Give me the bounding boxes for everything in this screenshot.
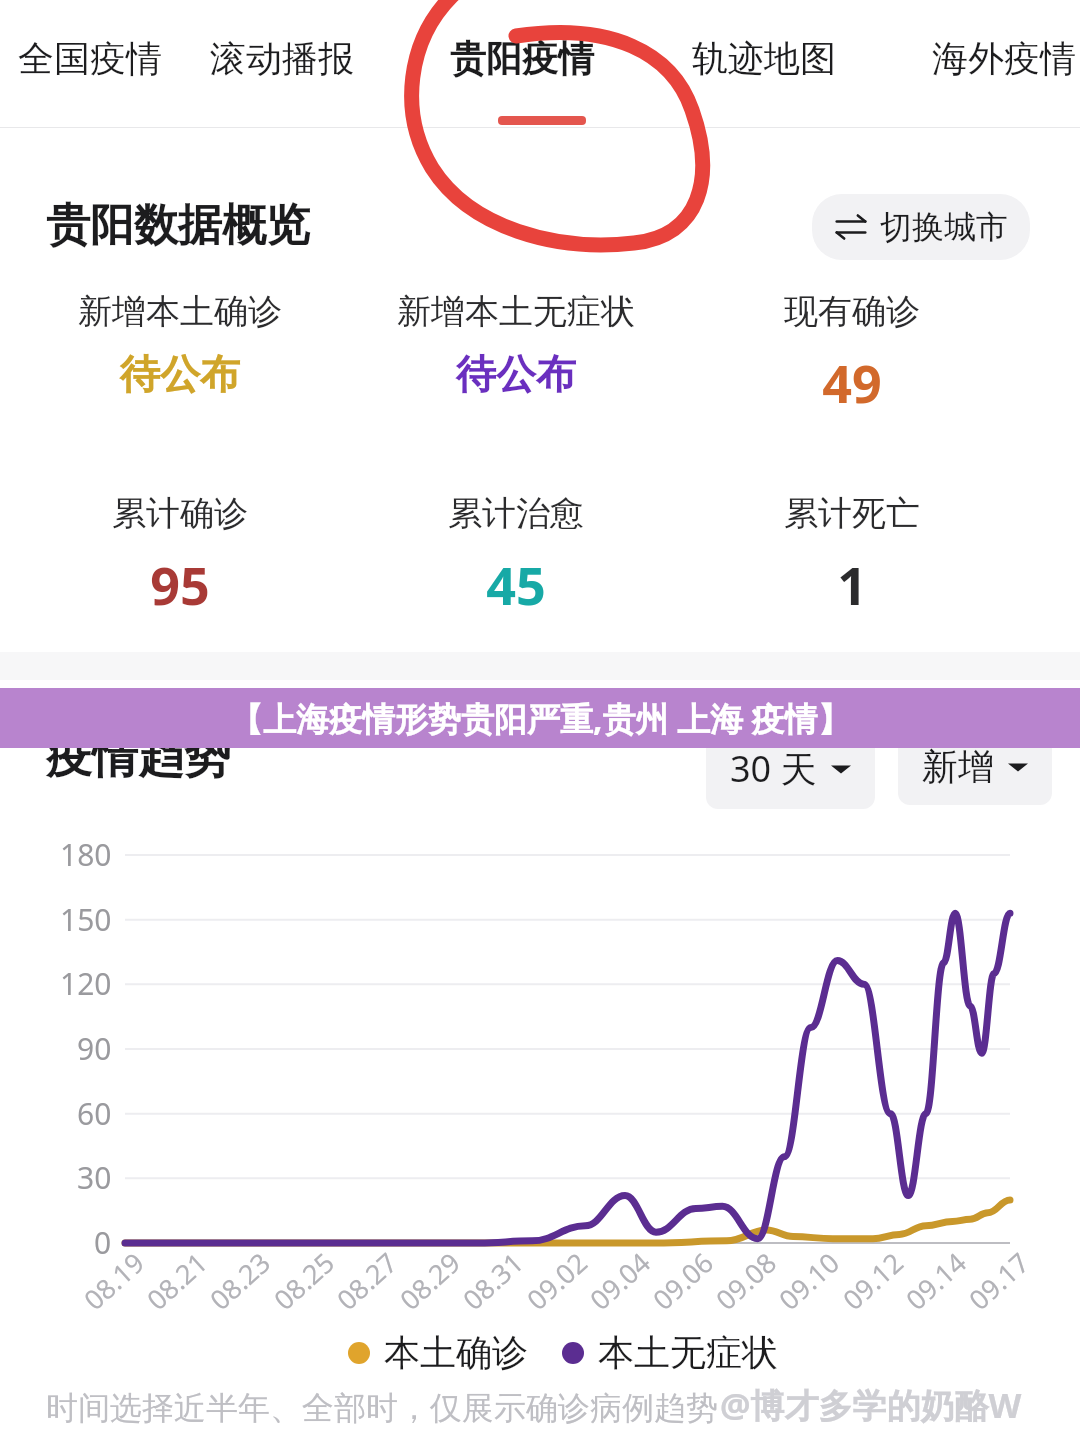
- staticText: 本土无症状: [598, 1330, 778, 1375]
- staticText: 【上海疫情形势贵阳严重,贵州 上海 疫情】: [230, 696, 851, 741]
- staticText: 08.27: [329, 1243, 405, 1318]
- staticText: 08.25: [266, 1243, 342, 1318]
- staticText: 0: [94, 1222, 112, 1263]
- staticText: 09.08: [708, 1243, 784, 1318]
- staticText: 09.17: [961, 1243, 1037, 1318]
- staticText: 08.31: [455, 1243, 531, 1318]
- staticText: @博才多学的奶酪W: [720, 1382, 1022, 1428]
- button[interactable]: 累计确诊: [0, 492, 360, 620]
- button[interactable]: 海外疫情: [930, 36, 1078, 81]
- staticText: 180: [60, 834, 112, 875]
- staticText: 全国疫情: [18, 36, 162, 81]
- staticText: 本土确诊: [384, 1330, 528, 1375]
- staticText: 09.10: [771, 1243, 847, 1318]
- button[interactable]: 轨迹地图: [690, 36, 838, 81]
- button[interactable]: Switch city: [812, 194, 1030, 260]
- staticText: 95: [150, 549, 210, 620]
- staticText: 90: [77, 1028, 112, 1069]
- staticText: 时间选择近半年、全部时，仅展示确诊病例趋势: [46, 1388, 718, 1428]
- button[interactable]: 累计死亡: [672, 492, 1032, 620]
- staticText: 待公布: [120, 349, 240, 399]
- staticText: 待公布: [456, 349, 576, 399]
- staticText: 09.04: [582, 1243, 658, 1318]
- button[interactable]: 本土无症状: [562, 1330, 778, 1375]
- button[interactable]: 现有确诊: [672, 290, 1032, 418]
- button[interactable]: 全国疫情: [16, 36, 164, 81]
- staticText: 累计治愈: [448, 492, 584, 535]
- staticText: 09.06: [645, 1243, 721, 1318]
- staticText: 贵阳数据概览: [46, 198, 310, 253]
- staticText: 海外疫情: [932, 36, 1076, 81]
- staticText: 09.02: [519, 1243, 595, 1318]
- staticText: 切换城市: [880, 207, 1008, 247]
- button[interactable]: 新增: [898, 728, 1052, 805]
- staticText: 新增: [922, 744, 994, 789]
- button[interactable]: 贵阳数据概览: [46, 198, 310, 253]
- staticText: 贵阳疫情: [450, 36, 594, 81]
- staticText: 新增本土无症状: [397, 290, 635, 333]
- button[interactable]: 新增本土无症状: [336, 290, 696, 399]
- button[interactable]: 累计治愈: [336, 492, 696, 620]
- button[interactable]: 新增本土确诊: [0, 290, 360, 399]
- staticText: 新增本土确诊: [78, 290, 282, 333]
- staticText: 轨迹地图: [692, 36, 836, 81]
- staticText: 09.12: [835, 1243, 911, 1318]
- staticText: 08.29: [392, 1243, 468, 1318]
- staticText: 疫情趋势: [46, 728, 230, 786]
- staticText: 滚动播报: [210, 36, 354, 81]
- button[interactable]: 滚动播报: [208, 36, 356, 81]
- staticText: 1: [837, 549, 867, 620]
- button[interactable]: 贵阳疫情: [448, 36, 596, 81]
- staticText: 30: [77, 1157, 112, 1198]
- button[interactable]: 疫情趋势: [46, 728, 230, 786]
- staticText: 08.23: [202, 1243, 278, 1318]
- staticText: 49: [822, 347, 882, 418]
- staticText: 08.21: [139, 1243, 215, 1318]
- button[interactable]: 本土确诊: [348, 1330, 528, 1375]
- other: Switch city: [834, 210, 868, 244]
- staticText: 60: [77, 1093, 112, 1134]
- staticText: 45: [486, 549, 546, 620]
- staticText: 08.19: [76, 1243, 152, 1318]
- staticText: 30 天: [730, 744, 817, 793]
- staticText: 累计死亡: [784, 492, 920, 535]
- button[interactable]: 30 天: [706, 728, 875, 809]
- staticText: 现有确诊: [784, 290, 920, 333]
- staticText: 120: [60, 963, 112, 1004]
- staticText: 150: [60, 899, 112, 940]
- staticText: 09.14: [898, 1243, 974, 1318]
- staticText: 累计确诊: [112, 492, 248, 535]
